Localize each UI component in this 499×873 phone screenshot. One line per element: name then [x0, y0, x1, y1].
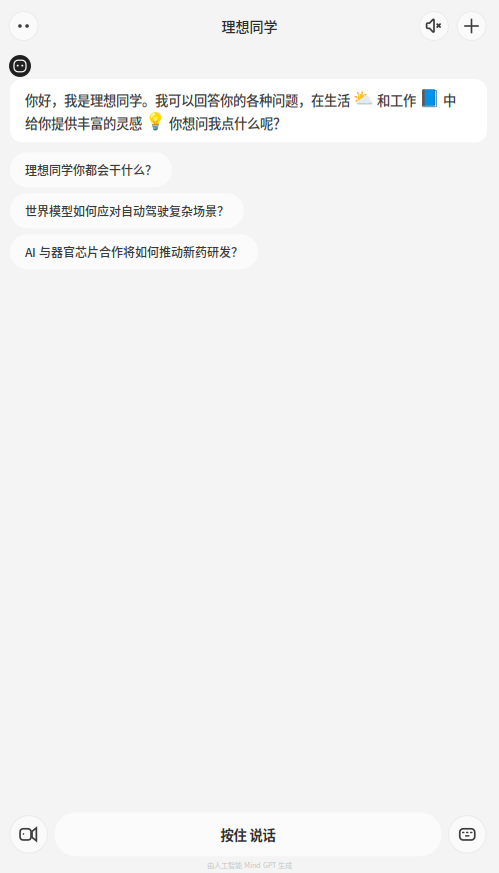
button[interactable]: New chat — [457, 11, 486, 40]
staticText: 你好，我是理想同学。我可以回答你的各种问题，在生活 ⛅ 和工作 📘 中 — [25, 89, 456, 109]
button[interactable]: Keyboard — [448, 816, 486, 853]
button[interactable]: More — [9, 11, 38, 40]
button[interactable]: 按住 说话 — [54, 812, 441, 856]
staticText: 理想同学 — [221, 16, 277, 36]
button[interactable]: Video call — [10, 816, 47, 853]
button[interactable]: Mute — [419, 11, 448, 40]
button[interactable]: AI 与器官芯片合作将如何推动新药研发？ — [10, 234, 258, 269]
staticText: 由人工智能 Mind GPT 生成 — [207, 859, 292, 870]
staticText: AI 与器官芯片合作将如何推动新药研发？ — [25, 243, 243, 260]
button[interactable]: 理想同学你都会干什么？ — [10, 152, 172, 187]
staticText: 理想同学你都会干什么？ — [25, 161, 157, 178]
staticText: 世界模型如何应对自动驾驶复杂场景？ — [25, 202, 229, 219]
staticText: 按住 说话 — [220, 825, 275, 844]
button[interactable]: 世界模型如何应对自动驾驶复杂场景？ — [10, 193, 244, 228]
staticText: 给你提供丰富的灵感 💡 你想问我点什么呢？ — [25, 112, 286, 132]
